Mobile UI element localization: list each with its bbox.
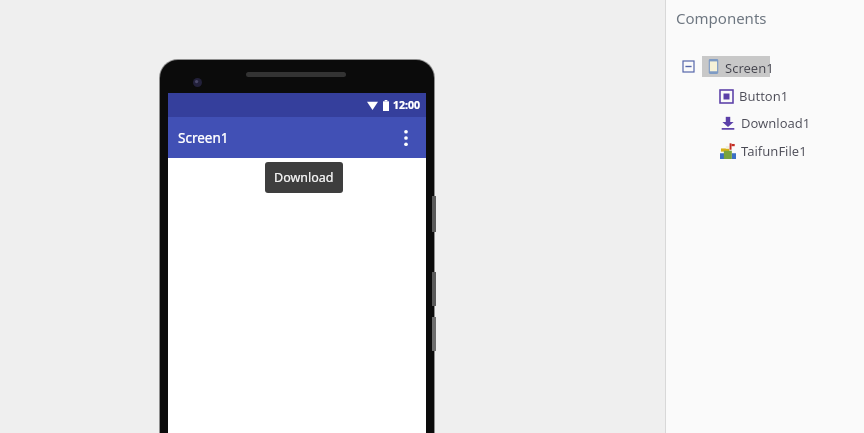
- button[interactable]: More options: [398, 126, 414, 150]
- staticText: TaifunFile1: [741, 142, 807, 160]
- button[interactable]: Collapse Screen1: [683, 61, 694, 72]
- button[interactable]: [702, 56, 770, 77]
- staticText: Download: [274, 169, 334, 186]
- staticText: Button1: [739, 87, 789, 105]
- staticText: Components: [676, 8, 767, 28]
- button[interactable]: TaifunFile1: [720, 141, 807, 161]
- button[interactable]: Button1: [720, 86, 789, 106]
- button[interactable]: Download: [265, 162, 343, 193]
- staticText: Screen1: [725, 59, 774, 77]
- staticText: 12:00: [393, 98, 420, 112]
- staticText: Screen1: [178, 129, 229, 147]
- staticText: Download1: [741, 114, 811, 132]
- button[interactable]: Download1: [721, 113, 811, 133]
